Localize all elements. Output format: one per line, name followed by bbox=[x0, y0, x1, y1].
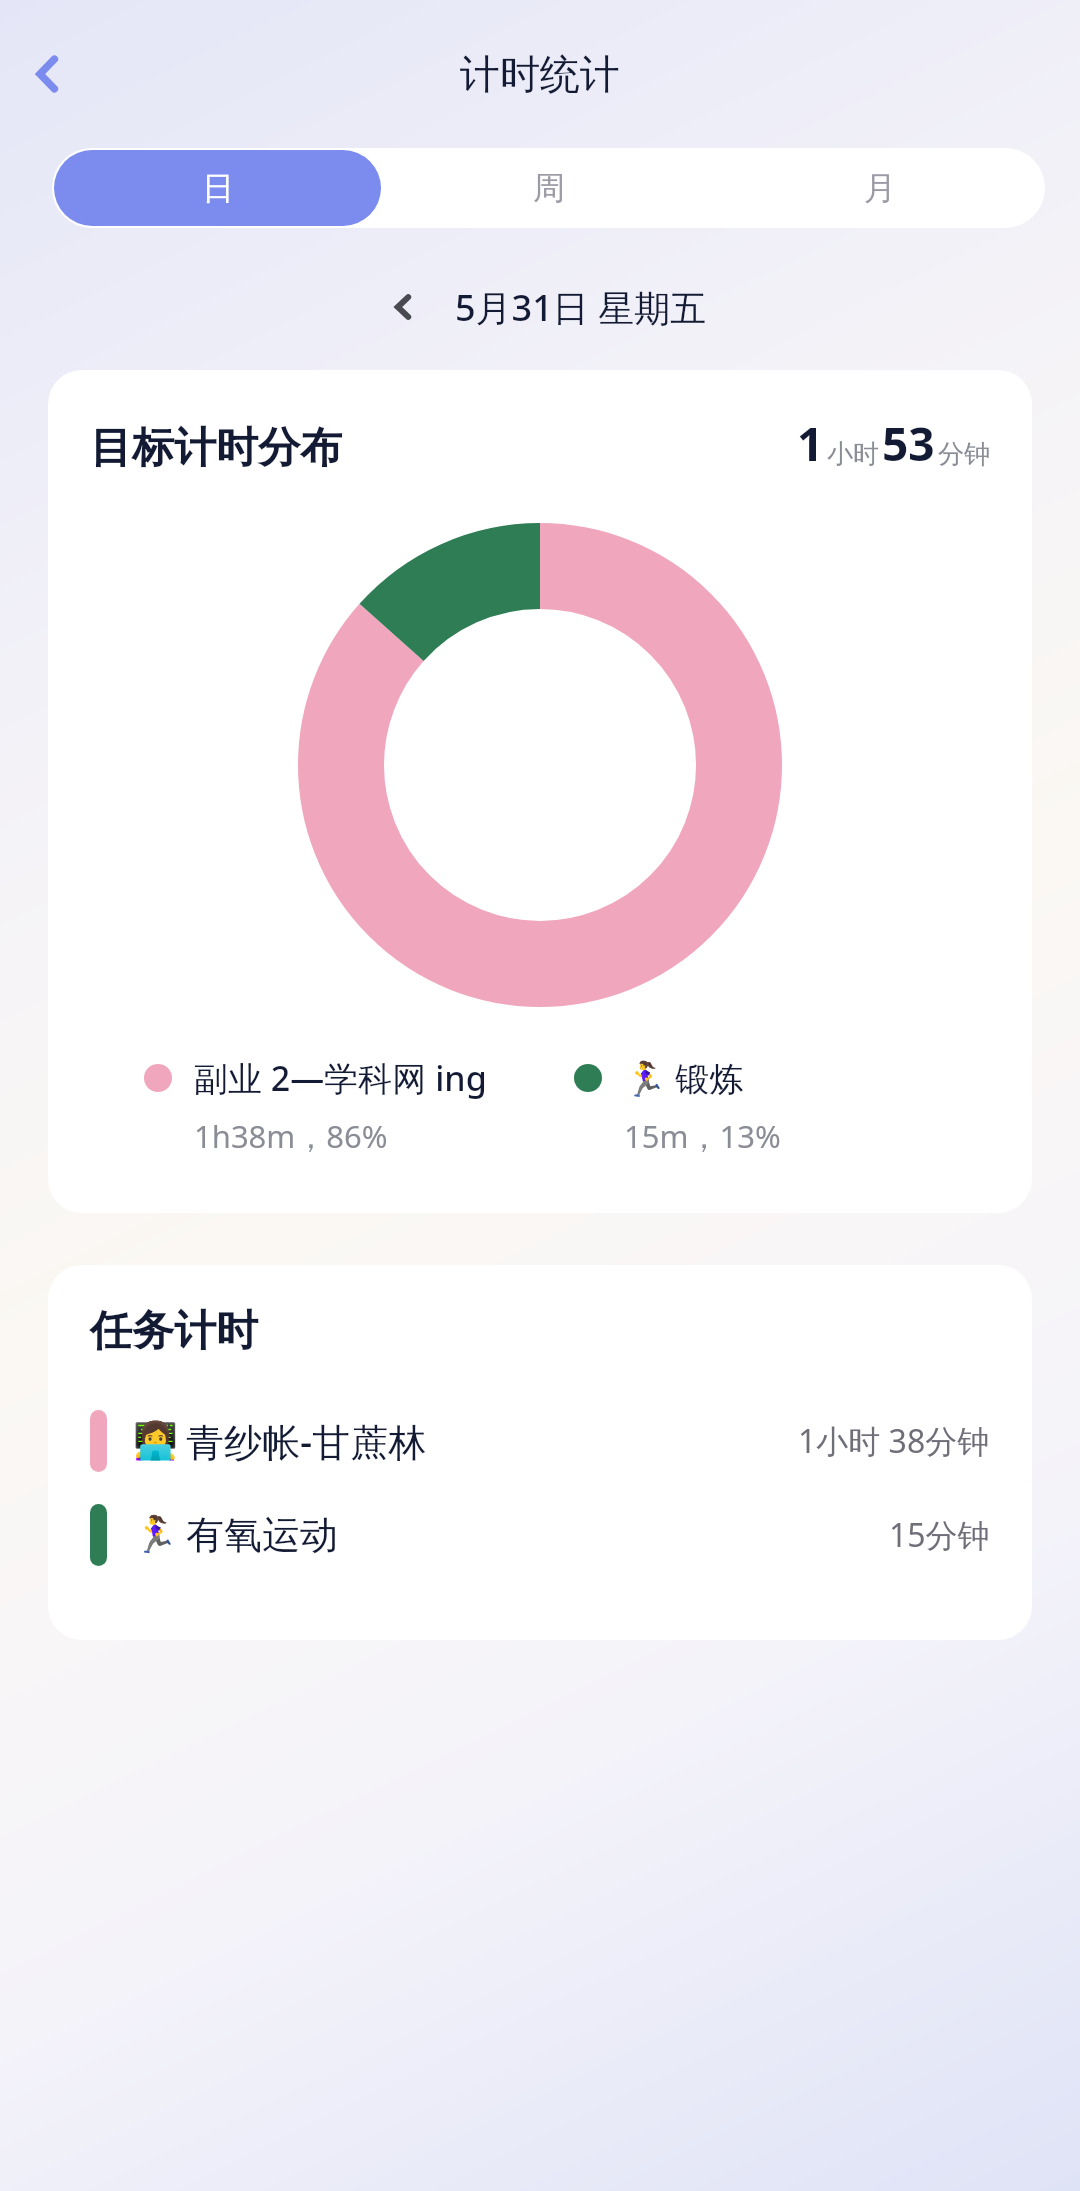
staticText: 月 bbox=[864, 168, 896, 208]
staticText: 1h38m，86% bbox=[194, 1115, 388, 1157]
staticText: 15分钟 bbox=[889, 1513, 990, 1557]
staticText: 分钟 bbox=[938, 438, 990, 471]
staticText: 目标计时分布 bbox=[90, 422, 342, 475]
staticText: 1 bbox=[797, 412, 824, 475]
staticText: 15m，13% bbox=[624, 1115, 781, 1157]
button[interactable]: 副业 2—学科网 ing bbox=[144, 1055, 504, 1157]
button[interactable]: 🏃‍♀️ 锻炼 bbox=[574, 1055, 990, 1157]
button[interactable]: 👩‍💻 bbox=[48, 1394, 1032, 1488]
button[interactable]: 月 bbox=[716, 150, 1043, 226]
staticText: 5月31日 星期五 bbox=[455, 283, 707, 332]
button[interactable]: Back bbox=[12, 38, 84, 110]
staticText: 副业 2—学科网 ing bbox=[194, 1055, 487, 1101]
staticText: 有氧运动 bbox=[186, 1511, 338, 1559]
staticText: 日 bbox=[202, 168, 234, 208]
staticText: 53 bbox=[882, 412, 935, 475]
staticText: 计时统计 bbox=[460, 49, 620, 99]
button[interactable]: Previous day bbox=[373, 277, 433, 337]
staticText: 👩‍💻 bbox=[133, 1420, 178, 1462]
staticText: 青纱帐-甘蔗林 bbox=[186, 1415, 427, 1467]
staticText: 小时 bbox=[827, 438, 879, 471]
button[interactable]: 日 bbox=[54, 150, 381, 226]
staticText: 🏃‍♀️ bbox=[133, 1514, 178, 1556]
staticText: 周 bbox=[533, 168, 565, 208]
button[interactable]: 周 bbox=[385, 150, 712, 226]
staticText: 🏃‍♀️ 锻炼 bbox=[624, 1055, 744, 1101]
staticText: 1小时 38分钟 bbox=[798, 1419, 990, 1463]
staticText: 任务计时 bbox=[90, 1305, 258, 1358]
button[interactable]: 🏃‍♀️ bbox=[48, 1488, 1032, 1582]
